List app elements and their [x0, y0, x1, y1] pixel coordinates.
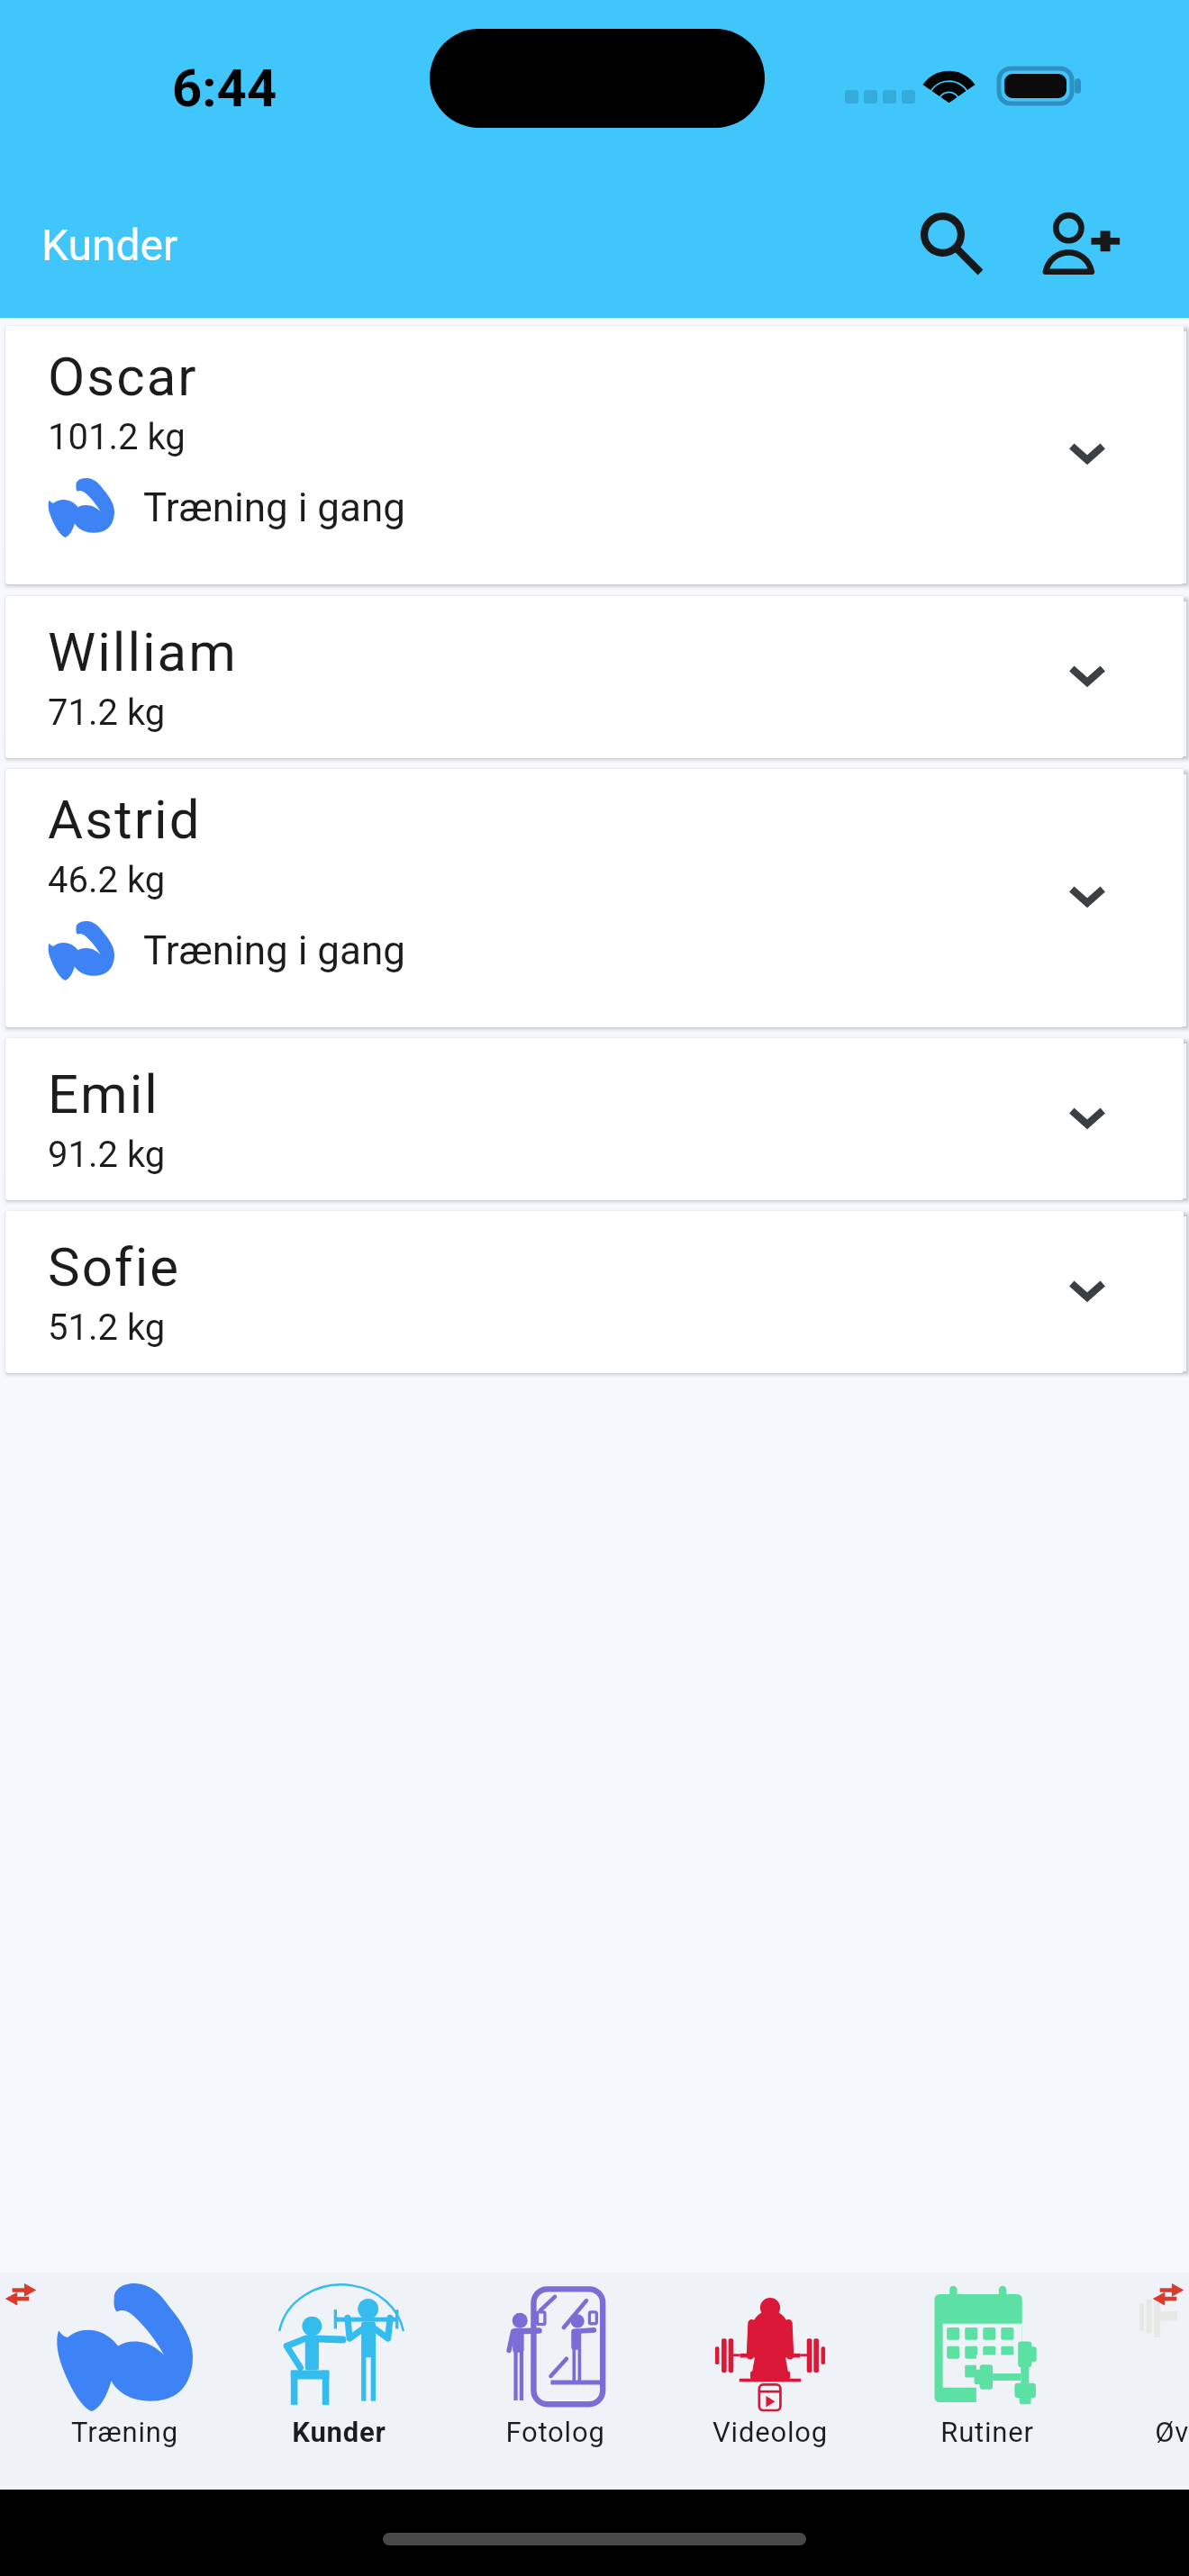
staticText: 46.2 kg — [48, 859, 166, 901]
staticText: Træning i gang — [143, 484, 405, 531]
button[interactable]: Emil — [5, 1038, 1184, 1200]
button[interactable]: Oscar — [5, 326, 1184, 584]
staticText: Træning i gang — [143, 927, 405, 974]
button[interactable]: Astrid — [5, 769, 1184, 1027]
staticText: 101.2 kg — [48, 416, 186, 458]
staticText: Fotolog — [505, 2416, 605, 2448]
staticText: Kunder — [41, 220, 178, 270]
staticText: Øvelser — [1155, 2416, 1189, 2448]
staticText: 51.2 kg — [48, 1306, 166, 1349]
button[interactable]: Sofie — [5, 1211, 1184, 1373]
staticText: Sofie — [48, 1235, 181, 1298]
button[interactable]: Search — [902, 194, 992, 284]
button[interactable]: Kunder — [231, 2273, 447, 2490]
button[interactable]: William — [5, 596, 1184, 758]
button[interactable]: Øvelser — [1095, 2273, 1189, 2490]
staticText: Videolog — [712, 2416, 828, 2448]
button[interactable]: Videolog — [662, 2273, 878, 2490]
button[interactable]: Træning — [16, 2273, 232, 2490]
staticText: Træning — [71, 2416, 178, 2448]
staticText: Rutiner — [940, 2416, 1034, 2448]
staticText: Emil — [48, 1062, 159, 1125]
staticText: 91.2 kg — [48, 1134, 166, 1176]
staticText: 6:44 — [172, 58, 277, 119]
staticText: Kunder — [292, 2416, 386, 2448]
staticText: Oscar — [48, 345, 198, 408]
staticText: William — [48, 620, 238, 683]
button[interactable]: Add client — [1041, 213, 1121, 273]
staticText: Astrid — [48, 788, 202, 851]
button[interactable]: Fotolog — [447, 2273, 663, 2490]
staticText: 71.2 kg — [48, 691, 166, 734]
button[interactable]: Rutiner — [879, 2273, 1095, 2490]
